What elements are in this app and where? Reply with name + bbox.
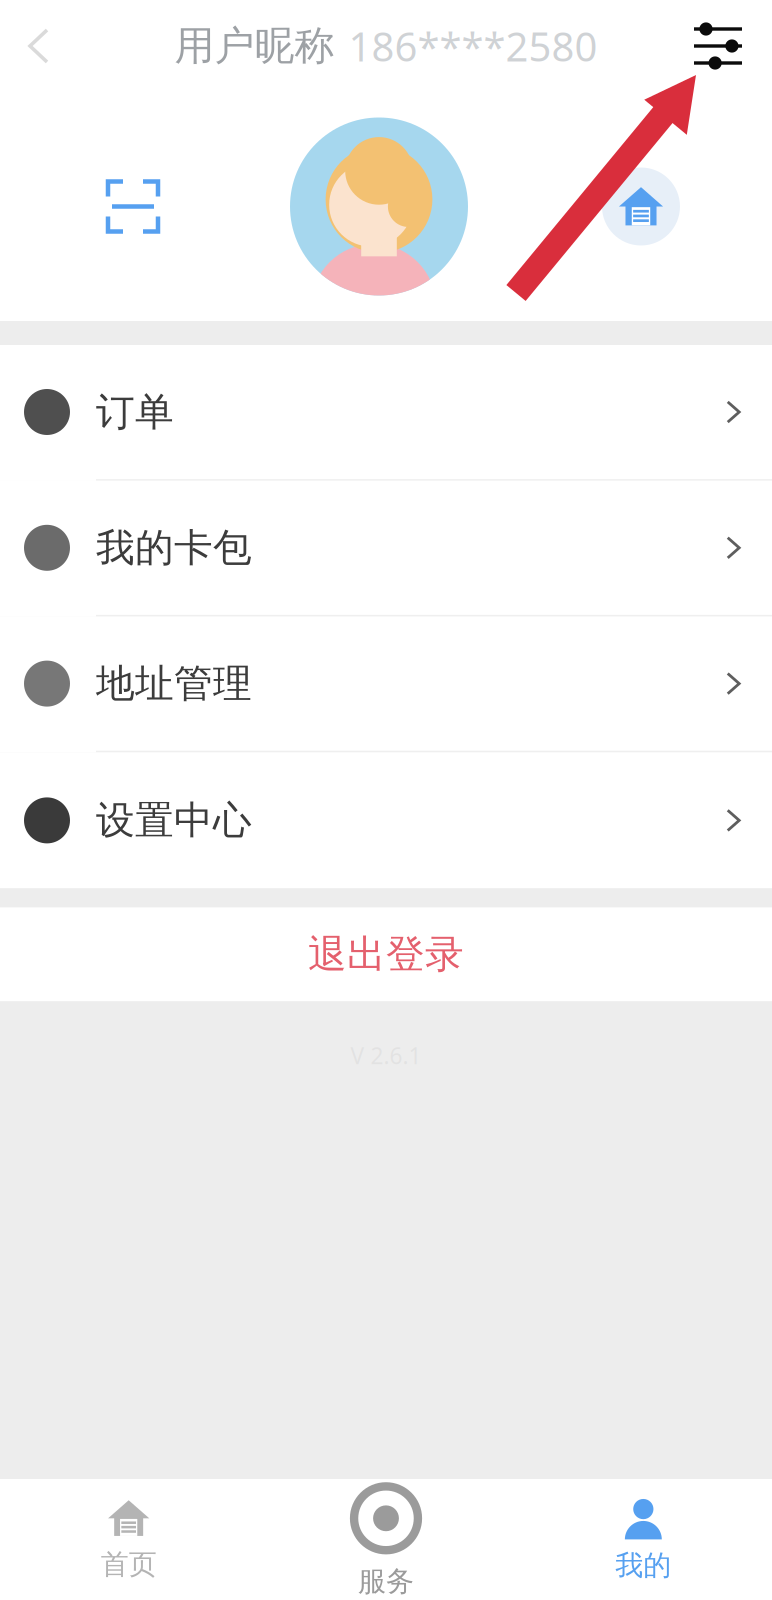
staticText: 订单 [96,388,174,436]
staticText: 首页 [101,1547,157,1582]
button[interactable]: Scan [88,161,178,251]
button[interactable]: 退出登录 [0,907,772,1001]
staticText: 设置中心 [96,797,252,844]
button[interactable]: 设置中心 [0,752,772,888]
staticText: 地址管理 [96,660,252,707]
staticText: 退出登录 [308,931,464,978]
staticText: V 2.6.1 [350,1040,421,1070]
button[interactable]: 服务 [257,1479,515,1600]
staticText: 用户昵称 [174,21,334,70]
button[interactable]: Back [0,0,76,92]
staticText: 我的 [615,1548,671,1583]
staticText: 我的卡包 [96,524,252,572]
button[interactable]: 首页 [0,1479,257,1600]
button[interactable]: 地址管理 [0,617,772,752]
button[interactable]: 我的 [515,1479,772,1600]
staticText: 服务 [358,1564,414,1599]
button[interactable]: Settings [668,0,772,92]
button[interactable]: 订单 [0,345,772,481]
button[interactable]: 我的卡包 [0,481,772,617]
staticText: 186****2580 [348,19,597,72]
button[interactable]: Home [596,161,686,251]
